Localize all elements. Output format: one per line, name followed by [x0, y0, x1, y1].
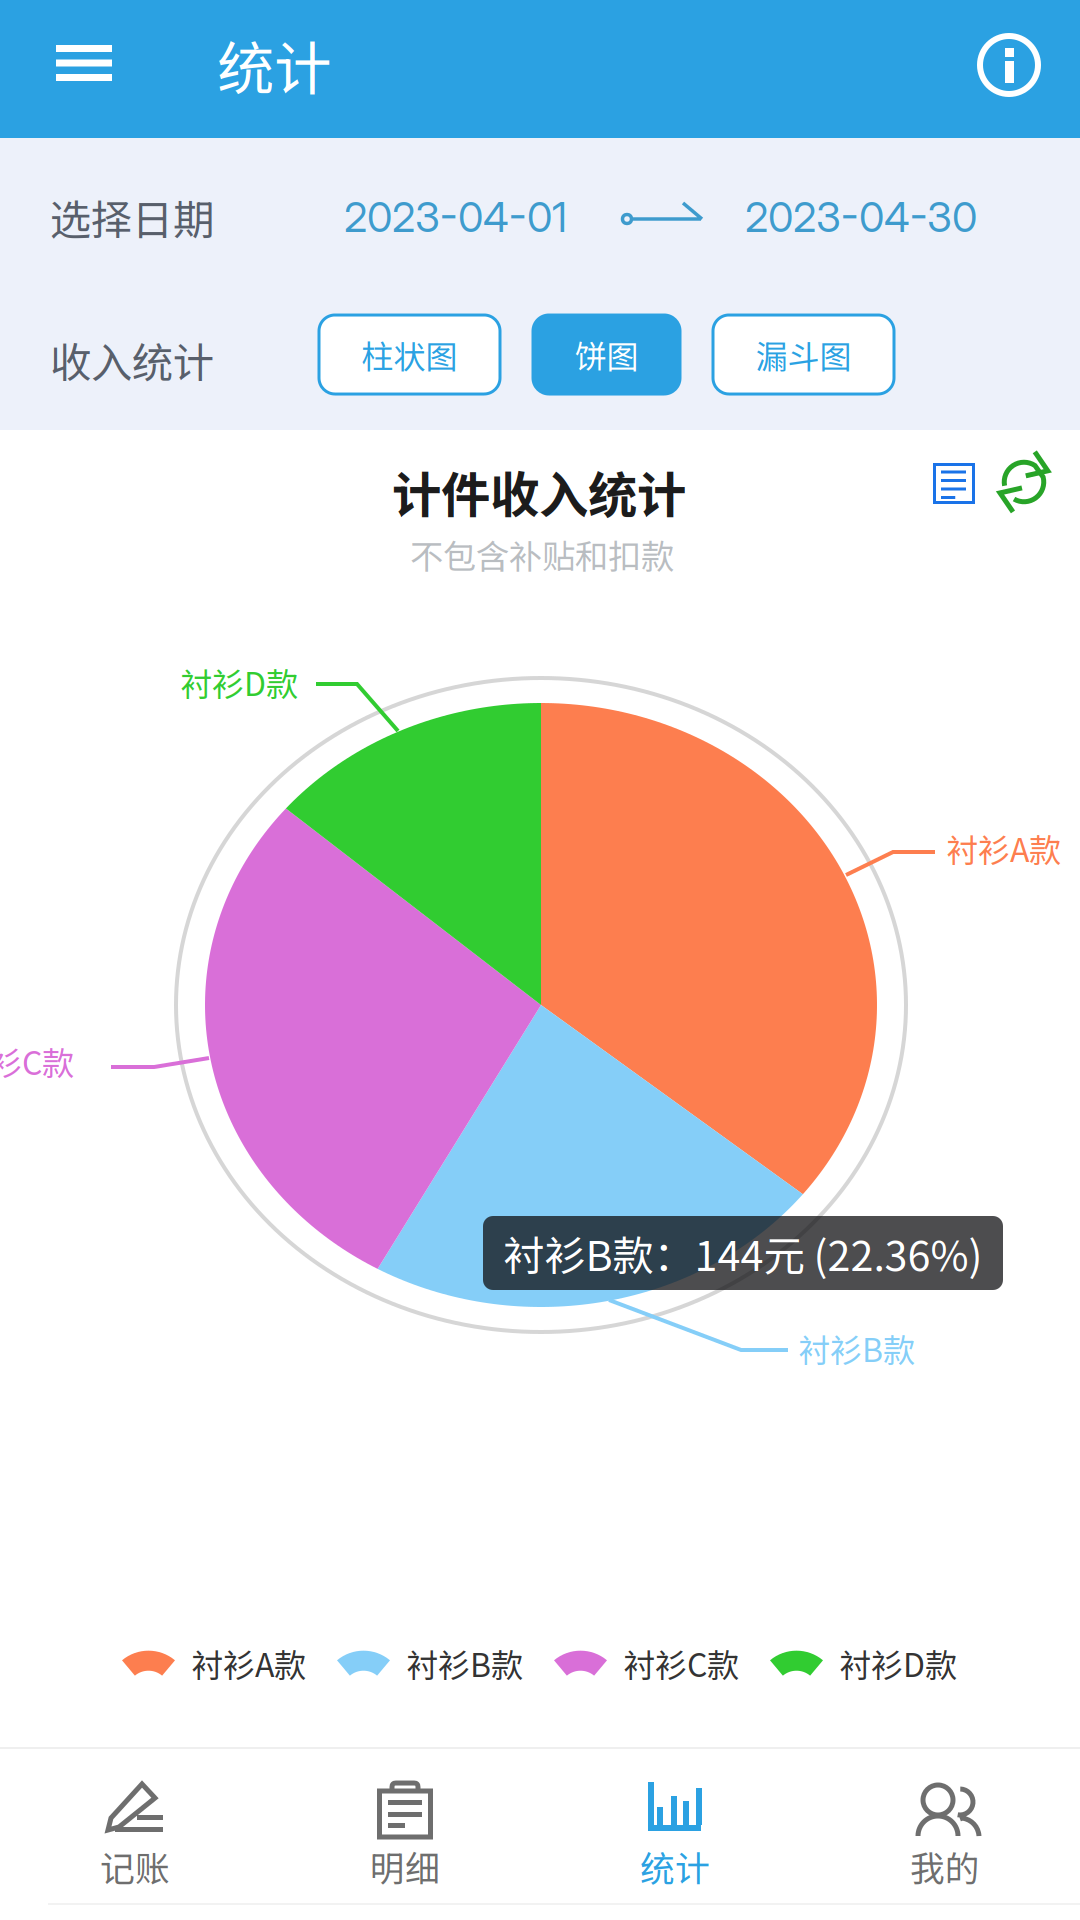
button[interactable]: 记账	[0, 1749, 270, 1904]
staticText: 饼图	[574, 331, 638, 378]
button[interactable]: Menu	[31, 20, 137, 116]
button[interactable]: 明细	[270, 1749, 540, 1904]
staticText: 明细	[370, 1841, 440, 1891]
staticText: 衬衫B款：144元 (22.36%)	[503, 1223, 982, 1283]
button[interactable]: 我的	[810, 1749, 1080, 1904]
button[interactable]: 柱状图	[319, 315, 500, 394]
staticText: 2023-04-30	[745, 192, 977, 242]
staticText: 收入统计	[50, 330, 214, 390]
staticText: 衬衫C款	[623, 1640, 739, 1686]
staticText: 衬衫D款	[839, 1640, 957, 1686]
staticText: 记账	[100, 1841, 170, 1891]
staticText: 我的	[910, 1841, 980, 1891]
button[interactable]: Refresh	[998, 456, 1050, 508]
button[interactable]: 2023-04-01	[338, 182, 573, 252]
staticText: 2023-04-01	[344, 192, 567, 242]
staticText: 衬衫A款	[191, 1640, 306, 1686]
staticText: 选择日期	[50, 187, 214, 247]
staticText: 衬衫C款	[0, 1038, 74, 1084]
staticText: 统计	[217, 23, 331, 106]
button[interactable]: 饼图	[533, 315, 680, 394]
staticText: 统计	[640, 1841, 710, 1891]
staticText: 计件收入统计	[392, 456, 686, 527]
button[interactable]: 漏斗图	[713, 315, 894, 394]
staticText: 衬衫A款	[946, 825, 1061, 871]
staticText: 柱状图	[361, 331, 457, 378]
staticText: 漏斗图	[755, 331, 851, 378]
button[interactable]: Data table	[933, 463, 975, 504]
button[interactable]: 统计	[540, 1749, 810, 1904]
staticText: 衬衫B款	[406, 1640, 523, 1686]
staticText: 衬衫B款	[798, 1325, 915, 1371]
staticText: 不包含补贴和扣款	[410, 530, 674, 578]
button[interactable]: Info	[961, 17, 1057, 113]
staticText: 衬衫D款	[180, 659, 298, 705]
button[interactable]: 2023-04-30	[739, 182, 983, 252]
